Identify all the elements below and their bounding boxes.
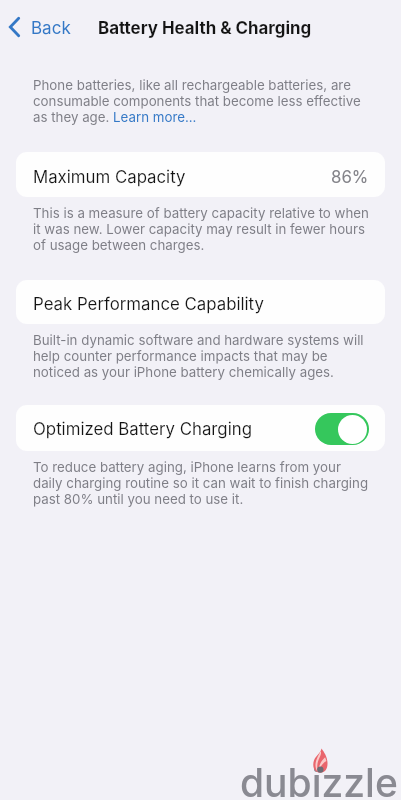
- staticText: Back: [31, 18, 71, 39]
- staticText: Maximum Capacity: [33, 167, 186, 187]
- button[interactable]: Phone batteries, like all rechargeable b…: [33, 77, 371, 125]
- button[interactable]: Optimized Battery Charging: [16, 405, 385, 451]
- button[interactable]: Maximum Capacity: [16, 152, 385, 197]
- staticText: To reduce battery aging, iPhone learns f…: [33, 459, 371, 507]
- button[interactable]: Peak Performance Capability: [16, 280, 385, 324]
- staticText: Optimized Battery Charging: [33, 419, 252, 439]
- staticText: Built-in dynamic software and hardware s…: [33, 332, 371, 380]
- staticText: This is a measure of battery capacity re…: [33, 205, 371, 253]
- button[interactable]: Back: [3, 10, 77, 43]
- staticText: Peak Performance Capability: [33, 294, 264, 314]
- staticText: dubizzle: [240, 759, 398, 800]
- button[interactable]: Optimized Battery Charging, on: [315, 413, 369, 445]
- staticText: 86%: [331, 167, 369, 187]
- staticText: Battery Health & Charging: [98, 18, 312, 38]
